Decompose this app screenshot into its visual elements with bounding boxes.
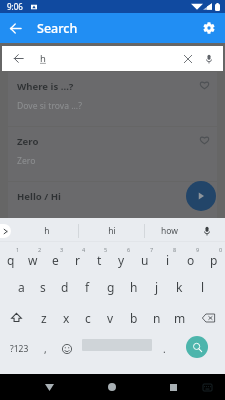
button[interactable]: d [54, 272, 76, 302]
staticText: l [201, 279, 205, 295]
button[interactable]: x [55, 302, 77, 333]
button[interactable]: Favourite [194, 130, 214, 150]
button[interactable]: Favourite [194, 185, 214, 205]
button[interactable]: Where is ...? [8, 72, 217, 126]
staticText: r [75, 252, 80, 268]
staticText: u [141, 252, 149, 268]
button[interactable]: Shift [0, 302, 33, 333]
staticText: x [63, 310, 70, 326]
button[interactable]: b [122, 302, 145, 333]
staticText: k [176, 279, 183, 295]
button[interactable]: , [34, 333, 56, 364]
button[interactable]: 8 [156, 242, 179, 272]
button[interactable]: Emoji [56, 333, 78, 364]
staticText: f [85, 279, 90, 295]
staticText: 4 [82, 246, 86, 253]
button[interactable]: 0 [202, 242, 225, 272]
button[interactable]: Search [185, 335, 209, 359]
staticText: h [40, 52, 46, 65]
button[interactable]: 3 [44, 242, 66, 272]
button[interactable]: hi [80, 219, 144, 243]
button[interactable]: Voice search [198, 48, 219, 69]
button[interactable]: Backspace [191, 302, 225, 333]
button[interactable]: h [122, 272, 145, 302]
staticText: hi [108, 225, 116, 237]
button[interactable]: c [77, 302, 99, 333]
button[interactable]: Settings [197, 16, 221, 40]
staticText: q [7, 252, 15, 268]
button[interactable]: ?123 [4, 333, 35, 364]
button[interactable]: 6 [110, 242, 133, 272]
button[interactable]: h [14, 219, 80, 243]
button[interactable]: Close search [2, 46, 223, 71]
staticText: d [61, 279, 69, 295]
button[interactable]: 4 [66, 242, 88, 272]
staticText: s [40, 279, 46, 295]
staticText: w [28, 252, 38, 268]
staticText: how [161, 225, 178, 237]
button[interactable]: Play translation [186, 181, 216, 211]
staticText: b [130, 310, 138, 326]
staticText: Dove si trova ...? [17, 100, 82, 112]
staticText: 9:06 [7, 1, 23, 12]
staticText: z [41, 310, 47, 326]
button[interactable]: Back [37, 375, 61, 399]
staticText: 9 [196, 246, 200, 253]
button[interactable]: Zero [8, 127, 217, 181]
button[interactable]: z [33, 302, 55, 333]
staticText: e [52, 252, 59, 268]
staticText: c [85, 310, 91, 326]
staticText: 1 [16, 246, 20, 253]
staticText: y [118, 252, 125, 268]
staticText: o [187, 252, 195, 268]
button[interactable]: Switch keyboard [195, 375, 219, 399]
staticText: v [107, 310, 114, 326]
button[interactable]: f [76, 272, 99, 302]
button[interactable]: a [10, 272, 32, 302]
staticText: 0 [219, 246, 223, 253]
button[interactable]: v [99, 302, 122, 333]
button[interactable]: m [168, 302, 191, 333]
button[interactable]: Hello / Hi [8, 182, 217, 236]
staticText: m [174, 310, 186, 326]
button[interactable]: j [145, 272, 168, 302]
staticText: , [44, 342, 47, 356]
button[interactable]: 5 [88, 242, 110, 272]
button[interactable]: . [152, 333, 177, 364]
button[interactable]: Voice input [196, 220, 218, 242]
staticText: p [210, 252, 218, 268]
staticText: Zero [17, 155, 36, 167]
staticText: j [155, 279, 159, 295]
staticText: t [97, 252, 102, 268]
button[interactable]: k [168, 272, 191, 302]
button[interactable]: Clear query [177, 48, 198, 69]
staticText: 7 [150, 246, 154, 253]
button[interactable]: 9 [179, 242, 202, 272]
staticText: Hello / Hi [17, 190, 61, 203]
button[interactable]: l [191, 272, 214, 302]
button[interactable]: g [99, 272, 122, 302]
button[interactable]: More suggestions [0, 224, 11, 238]
staticText: g [107, 279, 115, 295]
button[interactable]: 1 [0, 242, 22, 272]
staticText: a [18, 279, 25, 295]
staticText: 5 [104, 246, 108, 253]
staticText: h [44, 225, 50, 237]
staticText: Zero [17, 135, 39, 148]
button[interactable]: 2 [22, 242, 44, 272]
button[interactable]: Favourite [194, 75, 214, 95]
button[interactable]: how [146, 219, 192, 243]
button[interactable]: Home [100, 375, 124, 399]
button[interactable]: Recent apps [161, 375, 185, 399]
button[interactable]: s [32, 272, 54, 302]
button[interactable]: 7 [133, 242, 156, 272]
button[interactable]: n [145, 302, 168, 333]
staticText: i [166, 252, 170, 268]
staticText: h [130, 279, 138, 295]
button[interactable]: Navigate up [3, 16, 27, 40]
staticText: 3 [60, 246, 64, 253]
button[interactable]: Close search [8, 48, 29, 69]
staticText: 8 [173, 246, 177, 253]
staticText: ?123 [10, 343, 29, 355]
